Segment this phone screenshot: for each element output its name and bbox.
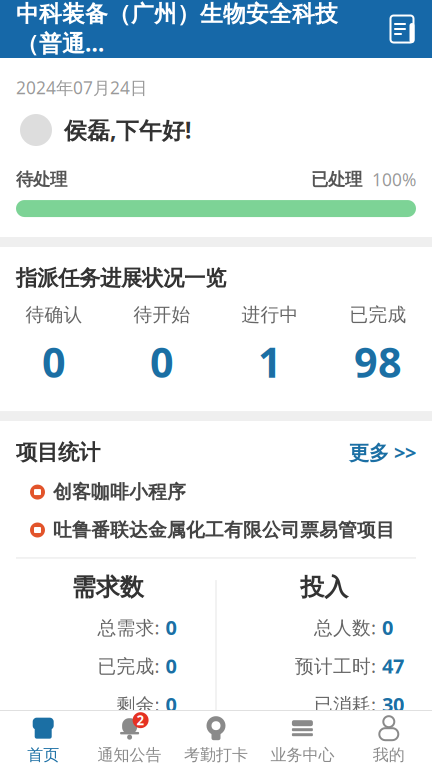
staticText: 2 — [137, 711, 145, 729]
button[interactable]: 首页 — [0, 711, 86, 768]
staticText: 0 — [165, 691, 176, 718]
staticText: 待处理 — [16, 169, 67, 190]
button[interactable]: 吐鲁番联达金属化工有限公司票易管项目 — [0, 503, 432, 541]
staticText: 0 — [382, 614, 393, 641]
button[interactable]: 我的 — [346, 711, 432, 768]
staticText: 侯磊,下午好! — [64, 115, 191, 145]
staticText: 更多 >> — [349, 439, 416, 466]
staticText: 剩余: — [116, 692, 159, 717]
staticText: 0 — [42, 334, 66, 389]
button[interactable]: 业务中心 — [259, 711, 346, 768]
staticText: 0 — [150, 334, 174, 389]
staticText: 已完成 — [349, 303, 406, 326]
staticText: 0 — [165, 614, 176, 641]
staticText: 预计工时: — [295, 653, 376, 678]
staticText: 需求数 — [72, 572, 144, 602]
staticText: 98 — [354, 334, 402, 389]
staticText: 0 — [165, 652, 176, 679]
staticText: 吐鲁番联达金属化工有限公司票易管项目 — [53, 518, 395, 541]
staticText: 考勤打卡 — [184, 745, 248, 765]
staticText: 创客咖啡小程序 — [53, 481, 186, 503]
staticText: 我的 — [373, 745, 405, 765]
staticText: 指派任务进展状况一览 — [16, 265, 226, 291]
staticText: 项目统计 — [16, 439, 100, 465]
button[interactable]: 考勤打卡 — [173, 711, 259, 768]
staticText: 总人数: — [314, 615, 376, 640]
staticText: 任务数 — [72, 744, 144, 768]
staticText: 已处理 — [311, 169, 362, 190]
button[interactable]: 更多 >> — [349, 439, 416, 466]
staticText: 已完成: — [97, 653, 159, 678]
staticText: 待确认 — [25, 303, 82, 326]
staticText: 待开始 — [133, 303, 190, 326]
staticText: 投入 — [300, 572, 348, 602]
staticText: 业务中心 — [270, 745, 334, 765]
staticText: 中科装备（广州）生物安全科技（普通… — [16, 0, 338, 58]
staticText: 1 — [258, 334, 282, 389]
button[interactable]: 2 — [86, 711, 173, 768]
staticText: 总需求: — [97, 615, 159, 640]
staticText: 47 — [382, 652, 404, 679]
staticText: Bug数 — [289, 743, 360, 768]
staticText: 已消耗: — [314, 692, 376, 717]
button[interactable]: 编辑 — [380, 7, 424, 51]
staticText: 通知公告 — [98, 745, 162, 765]
staticText: 首页 — [27, 745, 59, 765]
staticText: 2024年07月24日 — [16, 76, 147, 99]
staticText: 30 — [382, 691, 404, 718]
staticText: 100% — [362, 168, 416, 191]
button[interactable]: 创客咖啡小程序 — [0, 466, 432, 503]
staticText: 进行中 — [241, 303, 298, 326]
